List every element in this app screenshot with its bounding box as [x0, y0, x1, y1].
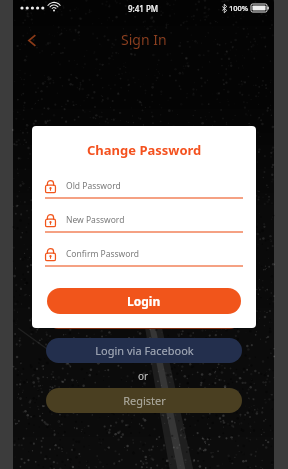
- button[interactable]: Old Password: [45, 175, 243, 209]
- button[interactable]: Login via Facebook: [46, 338, 242, 363]
- button[interactable]: Back: [19, 27, 45, 53]
- staticText: 100%: [229, 3, 249, 13]
- staticText: Login via Facebook: [95, 343, 194, 358]
- staticText: Login: [127, 293, 161, 309]
- staticText: Register: [123, 393, 166, 408]
- staticText: Login: [130, 309, 159, 324]
- button[interactable]: New Password: [45, 209, 243, 243]
- staticText: Old Password: [66, 180, 121, 192]
- button[interactable]: Login: [47, 288, 241, 314]
- staticText: New Password: [66, 214, 125, 226]
- staticText: Confirm Password: [66, 248, 139, 260]
- staticText: Change Password: [87, 141, 202, 159]
- button[interactable]: Login: [46, 304, 242, 329]
- staticText: or: [138, 369, 149, 383]
- staticText: Sign In: [121, 30, 167, 49]
- button[interactable]: Confirm Password: [45, 243, 243, 277]
- button[interactable]: Register: [46, 388, 242, 413]
- staticText: 9:41 PM: [128, 3, 159, 14]
